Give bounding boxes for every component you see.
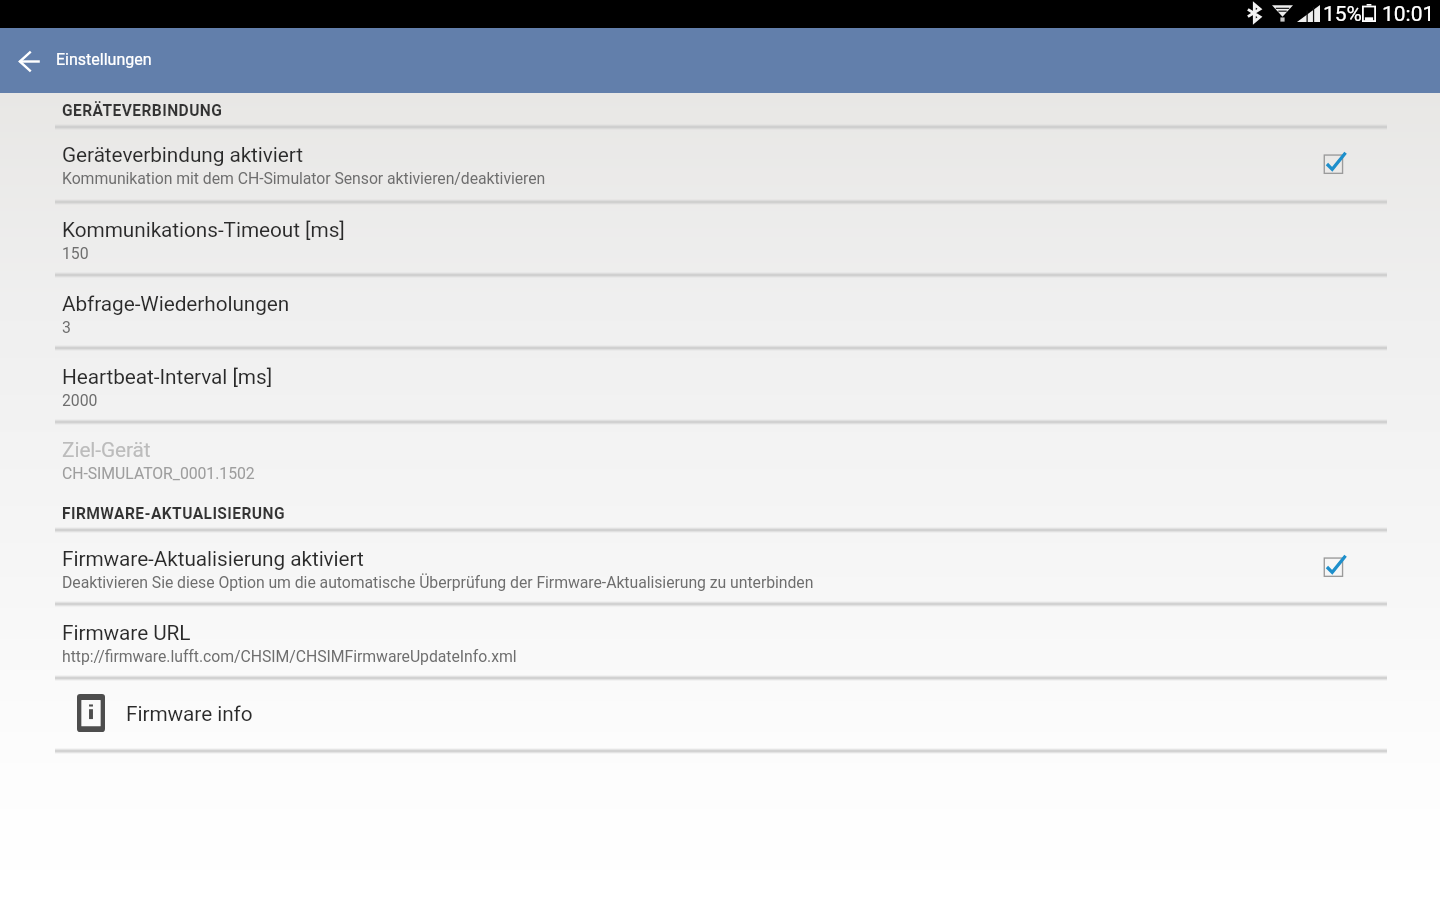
button[interactable]: Firmware URL [0,604,1440,678]
staticText: 10:01 [1382,2,1435,27]
button[interactable]: Toggle Firmware-Aktualisierung aktiviert [1308,541,1360,593]
button[interactable]: Firmware info [0,677,1440,750]
staticText: Heartbeat-Interval [ms] [62,365,273,389]
button[interactable]: Kommunikations-Timeout [ms] [0,201,1440,275]
button[interactable]: Ziel-Gerät [0,421,1440,494]
staticText: CH-SIMULATOR_0001.1502 [62,464,255,483]
button[interactable]: Back [8,40,50,82]
staticText: 150 [62,244,89,263]
staticText: Einstellungen [56,50,152,69]
staticText: Abfrage-Wiederholungen [62,292,290,316]
staticText: 15% [1323,2,1362,27]
button[interactable]: Heartbeat-Interval [ms] [0,348,1440,422]
staticText: 3 [62,318,71,337]
staticText: http://firmware.lufft.com/CHSIM/CHSIMFir… [62,647,517,666]
staticText: GERÄTEVERBINDUNG [62,102,223,120]
staticText: FIRMWARE-AKTUALISIERUNG [62,505,285,523]
staticText: 2000 [62,391,98,410]
staticText: Geräteverbindung aktiviert [62,143,304,167]
staticText: Kommunikations-Timeout [ms] [62,218,345,242]
staticText: Kommunikation mit dem CH-Simulator Senso… [62,169,546,188]
staticText: Firmware URL [62,621,191,645]
staticText: Firmware info [126,702,253,726]
button[interactable]: Geräteverbindung aktiviert [0,126,1440,201]
button[interactable]: Firmware-Aktualisierung aktiviert [0,530,1440,604]
staticText: Deaktivieren Sie diese Option um die aut… [62,573,814,592]
button[interactable]: Abfrage-Wiederholungen [0,275,1440,348]
staticText: Firmware-Aktualisierung aktiviert [62,547,364,571]
button[interactable]: Toggle Geräteverbindung aktiviert [1308,138,1360,190]
staticText: Ziel-Gerät [62,438,151,462]
